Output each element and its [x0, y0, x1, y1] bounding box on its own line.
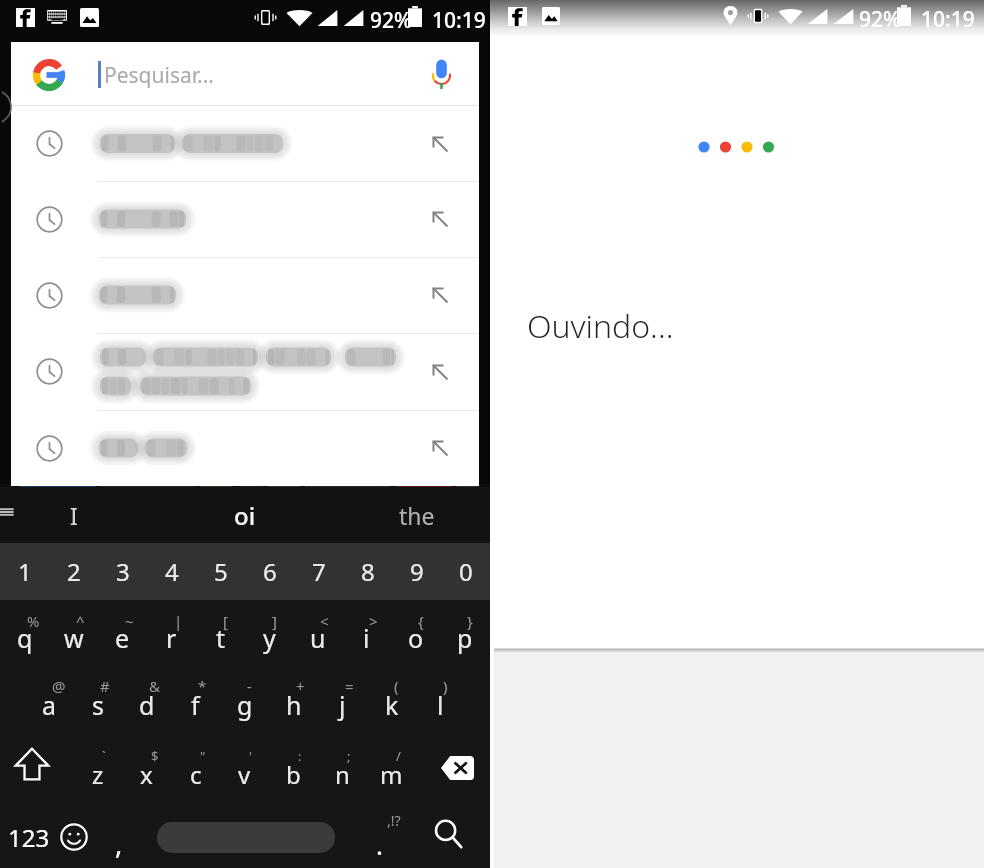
staticText: $	[151, 747, 159, 765]
staticText: 10:19	[921, 5, 975, 34]
button[interactable]: 4	[147, 543, 196, 600]
button[interactable]: i	[342, 600, 391, 676]
staticText: ;	[347, 747, 351, 765]
button[interactable]: 0	[441, 543, 490, 600]
staticText: (	[394, 676, 399, 696]
staticText: 2	[67, 555, 81, 588]
button[interactable]: 9	[392, 543, 441, 600]
staticText: 123	[8, 821, 50, 854]
button[interactable]: Use this suggestion	[422, 430, 458, 466]
button[interactable]: Use this suggestion	[422, 126, 458, 162]
staticText: w	[64, 621, 84, 655]
button[interactable]: Use this suggestion	[11, 410, 479, 486]
button[interactable]: 7	[294, 543, 343, 600]
button[interactable]: 6	[245, 543, 294, 600]
button[interactable]: Use this suggestion	[422, 354, 458, 390]
staticText: q	[17, 621, 33, 655]
button[interactable]: g	[220, 672, 269, 738]
staticText: =	[345, 676, 354, 696]
button[interactable]: x	[122, 742, 171, 806]
staticText: v	[238, 758, 251, 791]
button[interactable]: c	[171, 742, 220, 806]
staticText: .	[376, 827, 383, 862]
staticText: ,	[115, 825, 123, 862]
staticText: ^	[76, 611, 85, 631]
button[interactable]: 2	[49, 543, 98, 600]
staticText: @	[52, 676, 66, 696]
staticText: 1	[18, 555, 32, 588]
button[interactable]: 5	[196, 543, 245, 600]
button[interactable]: h	[269, 672, 318, 738]
button[interactable]: l	[416, 672, 465, 738]
staticText: f	[191, 688, 200, 722]
button[interactable]: 123	[0, 806, 58, 868]
staticText: |	[174, 611, 183, 631]
button[interactable]: ,	[98, 806, 140, 868]
button[interactable]: d	[122, 672, 171, 738]
button[interactable]: q	[0, 600, 49, 676]
button[interactable]: Use this suggestion	[422, 201, 458, 237]
button[interactable]: Use this suggestion	[422, 277, 458, 313]
button[interactable]: a	[25, 672, 74, 738]
staticText: j	[339, 688, 346, 722]
button[interactable]: Pesquisar...	[11, 42, 479, 105]
button[interactable]: Use this suggestion	[11, 106, 479, 181]
staticText: ,!?	[387, 811, 401, 830]
button[interactable]: u	[293, 600, 342, 676]
staticText: #	[100, 676, 110, 696]
button[interactable]: f	[171, 672, 220, 738]
button[interactable]: Use this suggestion	[11, 333, 479, 410]
button[interactable]: I	[18, 487, 130, 543]
button[interactable]: n	[318, 742, 367, 806]
button[interactable]: the	[360, 487, 473, 543]
staticText: 6	[263, 555, 277, 588]
button[interactable]: e	[98, 600, 147, 676]
button[interactable]: w	[49, 600, 98, 676]
button[interactable]: p	[440, 600, 489, 676]
staticText: z	[92, 758, 104, 791]
staticText: c	[190, 758, 202, 791]
staticText: &	[149, 676, 160, 696]
staticText: 0	[459, 555, 473, 588]
button[interactable]: k	[367, 672, 416, 738]
button[interactable]: Shift	[0, 742, 73, 806]
button[interactable]: v	[220, 742, 269, 806]
staticText: [	[223, 611, 228, 631]
staticText: oi	[234, 499, 256, 532]
button[interactable]: 3	[98, 543, 147, 600]
staticText: b	[286, 758, 301, 791]
staticText: 8	[361, 555, 375, 588]
button[interactable]	[140, 806, 352, 868]
staticText: i	[363, 621, 370, 655]
button[interactable]: o	[391, 600, 440, 676]
button[interactable]: j	[318, 672, 367, 738]
button[interactable]: r	[147, 600, 196, 676]
button[interactable]: Search	[414, 806, 490, 868]
button[interactable]: m	[367, 742, 416, 806]
button[interactable]: Voice search	[417, 50, 465, 98]
button[interactable]: s	[73, 672, 122, 738]
button[interactable]: t	[196, 600, 245, 676]
staticText: 5	[214, 555, 228, 588]
staticText: 9	[410, 555, 424, 588]
button[interactable]: z	[73, 742, 122, 806]
button[interactable]: Use this suggestion	[11, 257, 479, 333]
button[interactable]: ,!?	[352, 806, 414, 868]
button[interactable]: Keyboard options	[0, 502, 15, 522]
staticText: m	[380, 758, 403, 791]
staticText: 92%	[859, 5, 901, 34]
staticText: d	[139, 688, 155, 722]
staticText: g	[237, 688, 253, 722]
button[interactable]: 8	[343, 543, 392, 600]
button[interactable]: oi	[130, 487, 360, 543]
staticText: }	[467, 611, 473, 631]
button[interactable]: b	[269, 742, 318, 806]
staticText: a	[42, 688, 57, 722]
button[interactable]: Backspace	[416, 742, 490, 806]
button[interactable]: y	[245, 600, 294, 676]
button[interactable]: Use this suggestion	[11, 181, 479, 257]
button[interactable]: Emoji	[50, 806, 98, 868]
staticText: "	[200, 747, 206, 765]
staticText: /	[396, 747, 401, 765]
button[interactable]: 1	[0, 543, 49, 600]
